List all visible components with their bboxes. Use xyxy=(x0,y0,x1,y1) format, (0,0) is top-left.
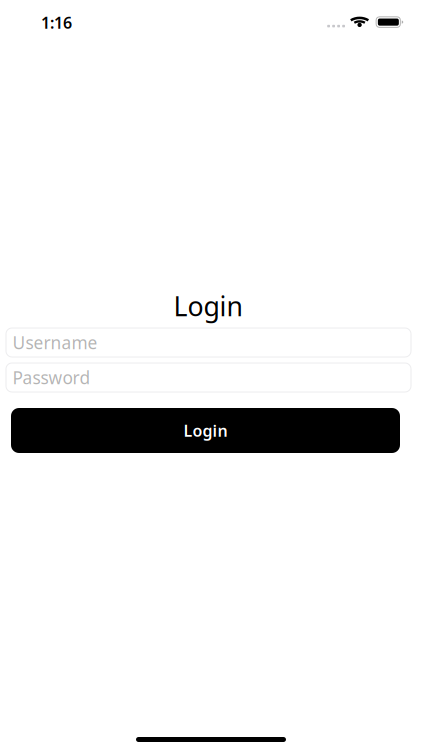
staticText: Login xyxy=(183,420,227,441)
staticText: 1:16 xyxy=(41,12,72,33)
staticText: Password xyxy=(12,366,90,389)
button[interactable]: Username xyxy=(6,328,411,357)
button[interactable]: Login xyxy=(11,408,400,453)
staticText: Login xyxy=(173,288,242,324)
staticText: Username xyxy=(12,331,97,354)
button[interactable]: Password xyxy=(6,363,411,392)
